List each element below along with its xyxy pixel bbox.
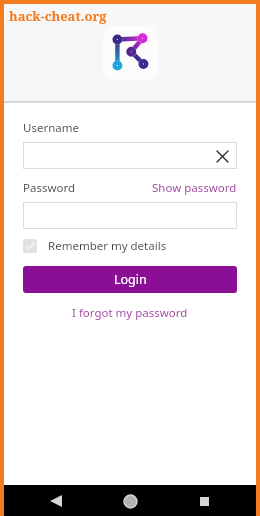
- button[interactable]: Login: [23, 266, 237, 293]
- button[interactable]: Clear username: [23, 142, 237, 169]
- button[interactable]: Remember my details: [23, 238, 237, 254]
- button[interactable]: Clear username: [213, 147, 231, 165]
- button[interactable]: Show password: [152, 180, 237, 196]
- button[interactable]: [23, 202, 237, 229]
- staticText: Show password: [152, 180, 237, 196]
- button[interactable]: I forgot my password: [23, 305, 237, 321]
- button[interactable]: Recent apps: [192, 489, 216, 513]
- button[interactable]: Back: [44, 489, 68, 513]
- staticText: hack-cheat.org: [9, 7, 107, 25]
- staticText: I forgot my password: [72, 305, 188, 321]
- button[interactable]: Home: [118, 489, 142, 513]
- staticText: Remember my details: [48, 238, 167, 254]
- staticText: Password: [23, 180, 76, 196]
- staticText: Username: [23, 120, 79, 136]
- staticText: Login: [114, 271, 147, 288]
